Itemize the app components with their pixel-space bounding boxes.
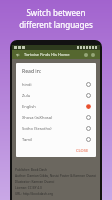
staticText: License: CC BY 4.0 — [15, 186, 42, 190]
staticText: Illustrator: Kamran Ovanci — [15, 180, 55, 184]
button[interactable]: Action — [90, 52, 96, 58]
button[interactable]: Action — [83, 52, 89, 58]
button[interactable]: Tamil — [22, 134, 91, 145]
button[interactable]: Sotho (Sesotho) — [22, 123, 91, 134]
button[interactable]: Zulu — [22, 90, 91, 101]
button[interactable]: hindi — [22, 79, 91, 90]
staticText: CLOSE — [76, 148, 89, 153]
staticText: Switch between — [26, 7, 86, 18]
staticText: English — [22, 104, 36, 109]
staticText: URL: http://bookdash.org — [15, 192, 53, 196]
staticText: Xhosa (isiXhosa) — [22, 115, 53, 120]
button[interactable]: Xhosa (isiXhosa) — [22, 112, 91, 123]
staticText: different languages — [19, 19, 93, 30]
staticText: Tortoise Finds His Home — [24, 52, 70, 57]
staticText: Tamil — [22, 137, 32, 142]
staticText: Zulu — [22, 93, 31, 98]
staticText: hindi — [22, 82, 32, 87]
staticText: Author: Damian Gibbs, Nosisi Poster & Ka… — [15, 174, 97, 178]
staticText: Publisher: Book Dash — [15, 168, 47, 172]
button[interactable]: Back — [15, 52, 21, 58]
staticText: Read in: — [22, 68, 42, 75]
staticText: Sotho (Sesotho) — [22, 126, 52, 131]
button[interactable]: English — [22, 101, 91, 112]
button[interactable]: CLOSE — [74, 147, 91, 154]
